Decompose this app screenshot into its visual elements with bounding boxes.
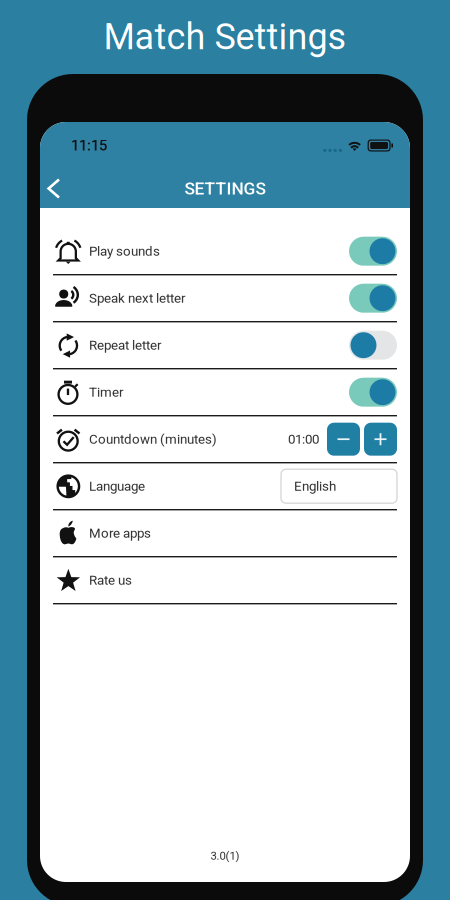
button[interactable]: English [281, 469, 397, 503]
staticText: a [169, 483, 217, 586]
staticText: Rate us [89, 572, 132, 588]
staticText: Speak next letter [89, 290, 186, 306]
staticText: 01:00 [288, 431, 319, 447]
button[interactable]: Timer [40, 369, 410, 416]
button[interactable]: Speak next letter [40, 275, 410, 322]
button[interactable]: Play sounds [40, 228, 410, 275]
staticText: 3.0(1) [210, 849, 239, 863]
staticText: Countdown (minutes) [89, 431, 217, 447]
button[interactable]: Back [37, 169, 71, 208]
staticText: Repeat letter [89, 337, 162, 353]
staticText: 11:15 [71, 137, 107, 154]
staticText: Play sounds [89, 243, 160, 259]
button[interactable]: Rate us [40, 557, 410, 604]
button[interactable]: Increase countdown [364, 423, 397, 456]
button[interactable]: Repeat letter [40, 322, 410, 369]
button[interactable]: Decrease countdown [327, 423, 360, 456]
button[interactable]: More apps [40, 510, 410, 557]
staticText: English [294, 478, 336, 494]
staticText: Timer [89, 384, 124, 400]
staticText: Match Settings [103, 16, 346, 58]
staticText: More apps [89, 525, 151, 541]
staticText: Language [89, 478, 145, 494]
staticText: SETTINGS [184, 178, 265, 199]
